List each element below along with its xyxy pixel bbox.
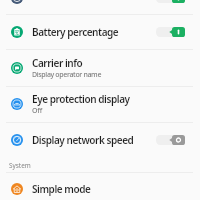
staticText: Carrier info: [32, 56, 83, 70]
staticText: Display operator name: [32, 70, 102, 80]
staticText: Eye protection display: [32, 92, 130, 106]
button[interactable]: Toggle, on: [156, 0, 185, 3]
staticText: Battery percentage: [32, 25, 119, 39]
staticText: Simple mode: [32, 182, 91, 196]
button[interactable]: Display network speed: [0, 123, 200, 158]
staticText: Off: [32, 106, 42, 116]
button[interactable]: Toggle, off: [156, 135, 185, 145]
button[interactable]: Eye protection display: [0, 87, 200, 123]
button[interactable]: Toggle, on: [156, 27, 185, 37]
staticText: System: [9, 161, 31, 170]
staticText: Display network speed: [32, 133, 134, 147]
button[interactable]: Battery percentage: [0, 15, 200, 50]
button[interactable]: Carrier info: [0, 50, 200, 87]
button[interactable]: Simple mode: [0, 172, 200, 200]
button[interactable]: Toggle, on: [0, 0, 200, 15]
